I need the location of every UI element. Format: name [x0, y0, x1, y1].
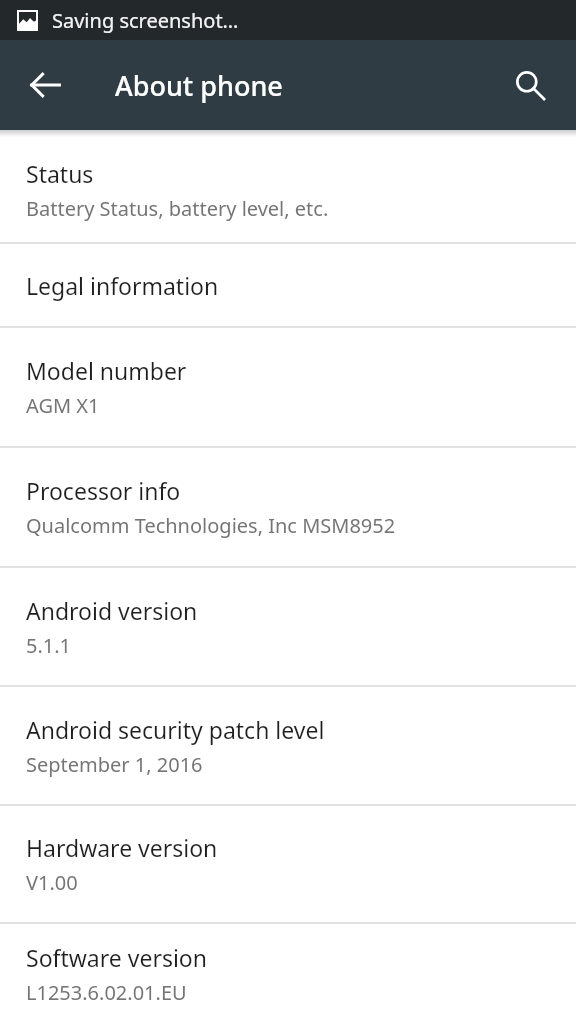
staticText: About phone	[115, 67, 283, 104]
button[interactable]: Legal information	[0, 244, 576, 326]
button[interactable]: Search	[490, 45, 570, 125]
staticText: Processor info	[26, 475, 181, 506]
button[interactable]: Android security patch level	[0, 687, 576, 804]
staticText: Software version	[26, 942, 207, 973]
staticText: Qualcomm Technologies, Inc MSM8952	[26, 512, 396, 539]
staticText: 5.1.1	[26, 632, 72, 659]
staticText: Android security patch level	[26, 714, 325, 745]
button[interactable]: Processor info	[0, 448, 576, 566]
staticText: Hardware version	[26, 832, 218, 863]
staticText: L1253.6.02.01.EU	[26, 979, 187, 1006]
button[interactable]: Back	[0, 40, 90, 130]
staticText: AGM X1	[26, 392, 100, 419]
staticText: Battery Status, battery level, etc.	[26, 195, 329, 222]
button[interactable]: Hardware version	[0, 806, 576, 922]
staticText: Status	[26, 158, 94, 189]
staticText: Model number	[26, 355, 187, 386]
button[interactable]: Status	[0, 137, 576, 242]
staticText: Saving screenshot…	[52, 7, 239, 34]
button[interactable]: Software version	[0, 924, 576, 1024]
button[interactable]: Model number	[0, 328, 576, 446]
staticText: Legal information	[26, 270, 219, 301]
button[interactable]: Android version	[0, 568, 576, 685]
staticText: V1.00	[26, 869, 78, 896]
staticText: Android version	[26, 595, 198, 626]
staticText: September 1, 2016	[26, 751, 203, 778]
